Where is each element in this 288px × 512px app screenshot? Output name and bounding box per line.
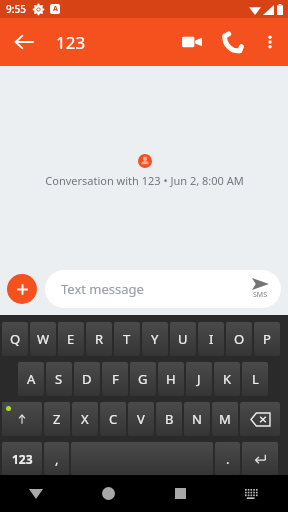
- button[interactable]: Z: [44, 402, 70, 436]
- staticText: Text message: [61, 280, 252, 298]
- button[interactable]: Y: [142, 322, 168, 356]
- button[interactable]: X: [72, 402, 98, 436]
- button[interactable]: U: [170, 322, 196, 356]
- button[interactable]: O: [226, 322, 252, 356]
- button[interactable]: E: [58, 322, 84, 356]
- staticText: 123: [56, 31, 86, 54]
- button[interactable]: M: [212, 402, 238, 436]
- staticText: T: [123, 330, 131, 348]
- button[interactable]: Enter: [242, 442, 278, 475]
- button[interactable]: H: [158, 362, 184, 396]
- button[interactable]: R: [86, 322, 112, 356]
- button[interactable]: Text message: [45, 270, 281, 308]
- button[interactable]: B: [156, 402, 182, 436]
- button[interactable]: L: [242, 362, 268, 396]
- staticText: C: [109, 410, 118, 428]
- button[interactable]: Shift: [2, 402, 42, 436]
- staticText: N: [192, 410, 202, 428]
- staticText: S: [55, 370, 63, 388]
- staticText: A: [27, 370, 36, 388]
- button[interactable]: P: [254, 322, 280, 356]
- staticText: U: [178, 330, 188, 348]
- staticText: Z: [53, 410, 61, 428]
- staticText: F: [112, 370, 119, 388]
- button[interactable]: 123: [2, 442, 42, 475]
- staticText: .: [226, 450, 230, 468]
- button[interactable]: A: [18, 362, 44, 396]
- button[interactable]: Send SMS: [252, 278, 269, 300]
- button[interactable]: D: [74, 362, 100, 396]
- button[interactable]: .: [215, 442, 240, 475]
- button[interactable]: Call: [212, 22, 252, 62]
- button[interactable]: C: [100, 402, 126, 436]
- button[interactable]: Backspace: [240, 402, 280, 436]
- button[interactable]: I: [198, 322, 224, 356]
- staticText: ,: [55, 450, 59, 468]
- staticText: O: [234, 330, 245, 348]
- staticText: 9:55: [6, 2, 26, 16]
- staticText: W: [37, 330, 50, 348]
- staticText: P: [263, 330, 271, 348]
- staticText: R: [95, 330, 104, 348]
- button[interactable]: Switch keyboard: [216, 475, 288, 512]
- button[interactable]: Q: [2, 322, 28, 356]
- button[interactable]: Home: [72, 475, 144, 512]
- button[interactable]: Add attachment: [7, 274, 37, 304]
- button[interactable]: Recent apps: [144, 475, 216, 512]
- button[interactable]: Space: [71, 442, 213, 475]
- staticText: D: [82, 370, 92, 388]
- button[interactable]: J: [186, 362, 212, 396]
- staticText: SMS: [253, 290, 268, 300]
- button[interactable]: W: [30, 322, 56, 356]
- button[interactable]: Back: [4, 22, 44, 62]
- staticText: E: [67, 330, 75, 348]
- staticText: Q: [10, 330, 21, 348]
- staticText: 123: [12, 451, 33, 467]
- button[interactable]: K: [214, 362, 240, 396]
- staticText: K: [223, 370, 232, 388]
- staticText: L: [252, 370, 259, 388]
- button[interactable]: More options: [252, 24, 288, 60]
- button[interactable]: F: [102, 362, 128, 396]
- staticText: Conversation with 123 • Jun 2, 8:00 AM: [45, 173, 244, 188]
- button[interactable]: N: [184, 402, 210, 436]
- button[interactable]: Back: [0, 475, 72, 512]
- staticText: J: [197, 370, 201, 388]
- staticText: V: [137, 410, 145, 428]
- staticText: H: [166, 370, 176, 388]
- button[interactable]: G: [130, 362, 156, 396]
- button[interactable]: Video call: [172, 22, 212, 62]
- button[interactable]: S: [46, 362, 72, 396]
- staticText: X: [81, 410, 89, 428]
- staticText: I: [209, 330, 214, 348]
- staticText: Y: [151, 330, 159, 348]
- button[interactable]: ,: [44, 442, 69, 475]
- staticText: M: [219, 410, 231, 428]
- staticText: G: [138, 370, 148, 388]
- staticText: A: [53, 4, 58, 14]
- staticText: B: [165, 410, 174, 428]
- button[interactable]: V: [128, 402, 154, 436]
- button[interactable]: T: [114, 322, 140, 356]
